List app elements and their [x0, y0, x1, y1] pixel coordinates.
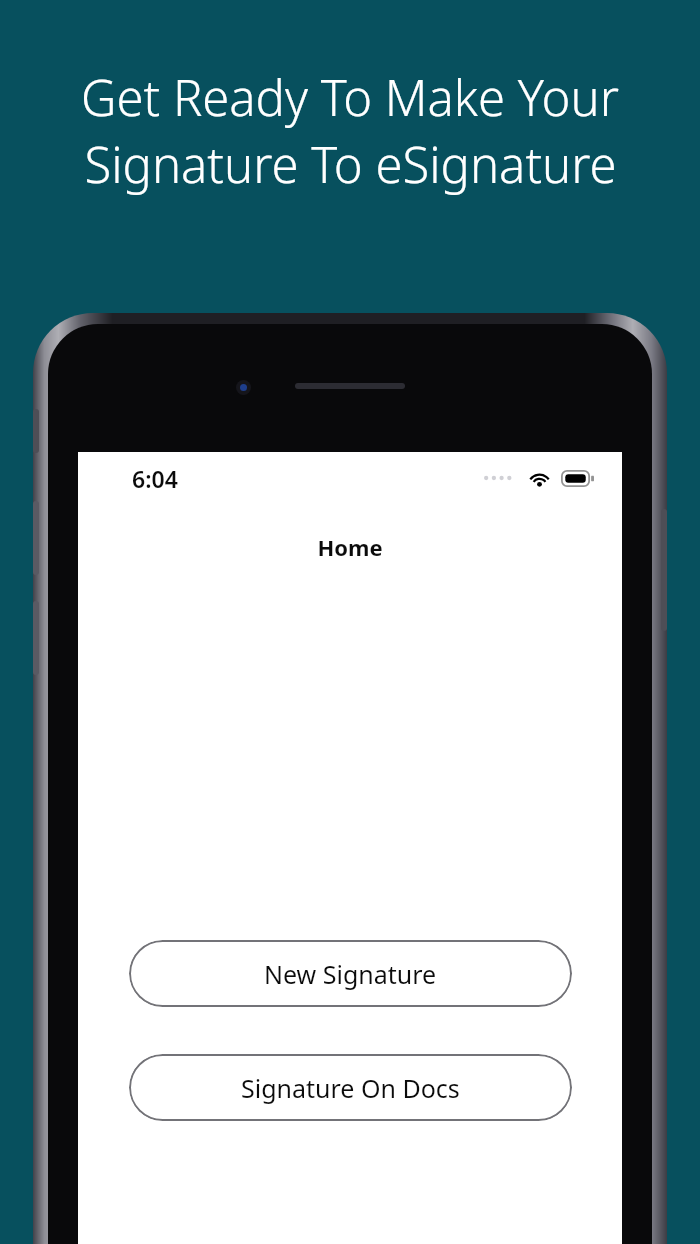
staticText: Signature To eSignature	[84, 131, 617, 198]
staticText: Signature On Docs	[241, 1071, 460, 1105]
other: Cellular signal	[484, 474, 516, 482]
other: Battery	[561, 470, 594, 487]
button[interactable]: New Signature	[129, 940, 572, 1007]
staticText: Home	[78, 532, 622, 562]
staticText: New Signature	[264, 957, 437, 991]
staticText: Get Ready To Make Your	[81, 64, 619, 131]
staticText: 6:04	[132, 463, 178, 494]
other: Wi-Fi	[527, 469, 552, 487]
button[interactable]: Signature On Docs	[129, 1054, 572, 1121]
